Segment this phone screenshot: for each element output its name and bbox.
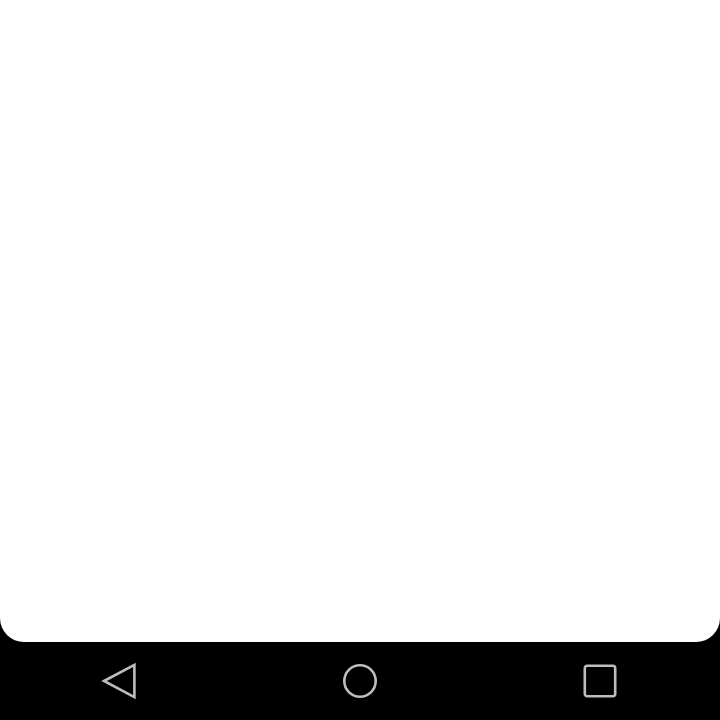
button[interactable]: Recent apps: [480, 642, 720, 720]
button[interactable]: Back: [0, 642, 240, 720]
button[interactable]: Home: [240, 642, 480, 720]
